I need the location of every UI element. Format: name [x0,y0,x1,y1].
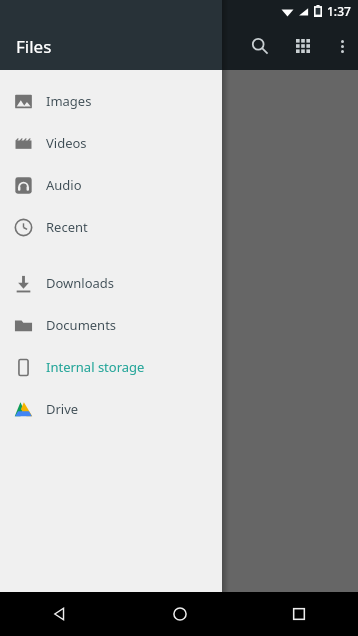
button[interactable]: Grid view [285,28,321,64]
button[interactable]: Downloads [0,262,222,304]
button[interactable]: Videos [0,122,222,164]
button[interactable]: Recent [0,206,222,248]
button[interactable]: More options [326,29,358,63]
staticText: Files [16,35,52,58]
staticText: Recent [46,218,88,236]
button[interactable]: Images [0,80,222,122]
staticText: Videos [46,134,87,152]
staticText: Images [46,92,92,110]
button[interactable]: Internal storage [0,346,222,388]
button[interactable]: Audio [0,164,222,206]
button[interactable]: Drive [0,388,222,430]
staticText: Downloads [46,274,115,292]
button[interactable]: Home [120,592,239,636]
staticText: Documents [46,316,117,334]
staticText: Drive [46,400,79,418]
button[interactable]: Back [0,592,120,636]
button[interactable]: Search [242,28,278,64]
button[interactable]: Documents [0,304,222,346]
staticText: Audio [46,176,82,194]
button[interactable]: Recents [239,592,358,636]
staticText: 1:37 [327,3,351,19]
staticText: Internal storage [46,358,145,376]
